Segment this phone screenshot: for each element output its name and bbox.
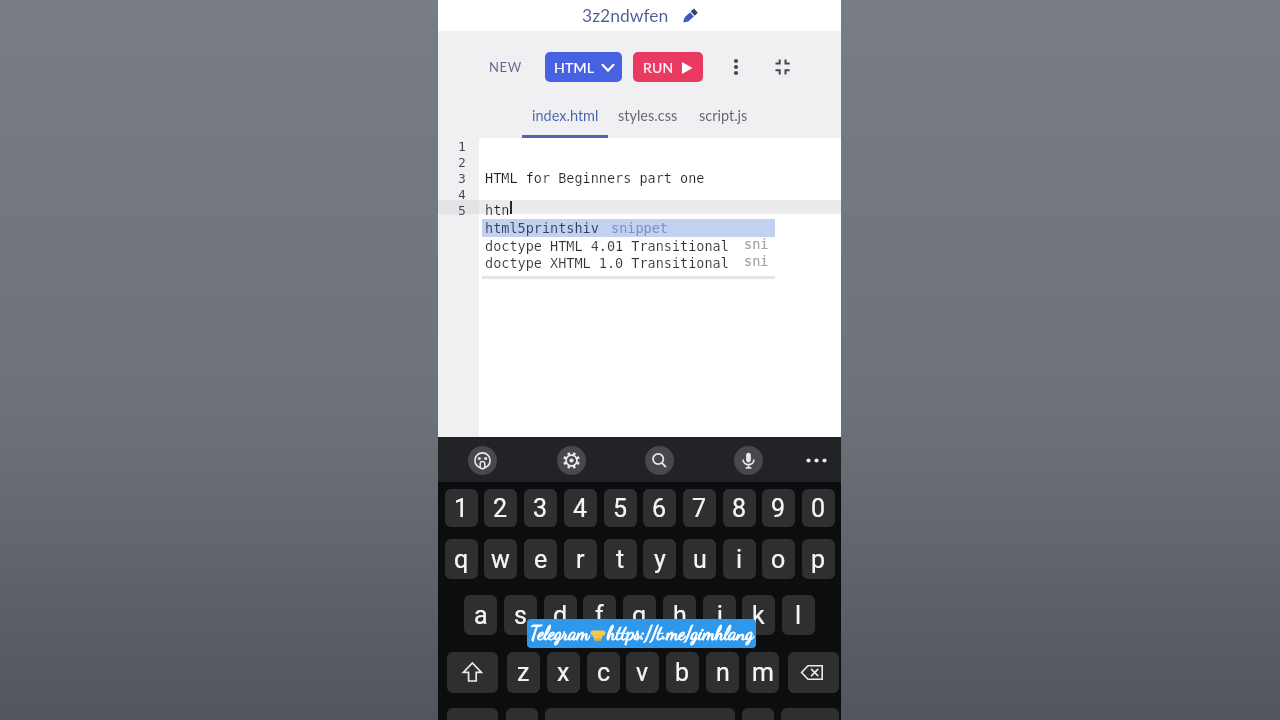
staticText: 1: [458, 139, 466, 154]
staticText: 8: [732, 494, 747, 523]
button[interactable]: 4: [564, 489, 597, 527]
button[interactable]: z: [507, 652, 540, 693]
button[interactable]: [506, 708, 538, 720]
staticText: k: [752, 601, 765, 630]
button[interactable]: Telegram: [527, 619, 756, 648]
button[interactable]: [645, 446, 674, 475]
staticText: script.js: [699, 107, 748, 124]
button[interactable]: 2: [484, 489, 517, 527]
staticText: 5: [458, 203, 466, 218]
staticText: styles.css: [618, 107, 678, 124]
button[interactable]: c: [587, 652, 620, 693]
staticText: c: [597, 658, 611, 687]
button[interactable]: x: [547, 652, 580, 693]
staticText: 2: [458, 155, 466, 170]
button[interactable]: HTML: [545, 52, 622, 82]
button[interactable]: [802, 446, 831, 475]
button[interactable]: [781, 708, 839, 720]
button[interactable]: r: [564, 539, 597, 579]
staticText: snippet: [611, 220, 668, 236]
button[interactable]: 9: [762, 489, 795, 527]
button[interactable]: k: [742, 595, 775, 635]
button[interactable]: 3: [524, 489, 557, 527]
button[interactable]: 1: [445, 489, 478, 527]
staticText: 7: [692, 494, 707, 523]
button[interactable]: a: [464, 595, 497, 635]
button[interactable]: w: [484, 539, 517, 579]
staticText: doctype XHTML 1.0 Transitional: [485, 255, 729, 271]
staticText: snip: [744, 253, 775, 273]
staticText: HTML for Beginners part one: [485, 170, 705, 186]
button[interactable]: index.html: [522, 100, 608, 130]
button[interactable]: g: [623, 595, 656, 635]
button[interactable]: [447, 708, 498, 720]
staticText: x: [557, 658, 570, 687]
staticText: p: [811, 545, 826, 574]
button[interactable]: q: [445, 539, 478, 579]
button[interactable]: n: [706, 652, 739, 693]
button[interactable]: 7: [683, 489, 716, 527]
staticText: b: [675, 658, 690, 687]
button[interactable]: 8: [723, 489, 756, 527]
staticText: index.html: [532, 107, 599, 124]
button[interactable]: [771, 54, 797, 80]
button[interactable]: [447, 652, 498, 693]
button[interactable]: [482, 237, 775, 255]
button[interactable]: [788, 652, 839, 693]
button[interactable]: s: [504, 595, 537, 635]
button[interactable]: [742, 708, 774, 720]
button[interactable]: i: [723, 539, 756, 579]
button[interactable]: b: [666, 652, 699, 693]
staticText: 1: [454, 494, 469, 523]
button[interactable]: t: [604, 539, 637, 579]
button[interactable]: u: [683, 539, 716, 579]
button[interactable]: 6: [643, 489, 676, 527]
button[interactable]: y: [643, 539, 676, 579]
button[interactable]: [482, 219, 775, 237]
button[interactable]: script.js: [693, 100, 753, 130]
button[interactable]: l: [782, 595, 815, 635]
staticText: y: [654, 545, 666, 574]
staticText: v: [636, 658, 649, 687]
staticText: g: [632, 601, 647, 630]
button[interactable]: 5: [604, 489, 637, 527]
button[interactable]: d: [544, 595, 577, 635]
button[interactable]: j: [703, 595, 736, 635]
button[interactable]: e: [524, 539, 557, 579]
staticText: w: [491, 545, 510, 574]
staticText: 3: [458, 171, 466, 186]
button[interactable]: NEW: [480, 52, 530, 82]
staticText: j: [717, 601, 723, 630]
staticText: r: [576, 545, 585, 574]
button[interactable]: f: [583, 595, 616, 635]
button[interactable]: p: [802, 539, 835, 579]
staticText: doctype HTML 4.01 Transitional: [485, 238, 729, 254]
staticText: html5printshiv: [485, 220, 599, 236]
staticText: HTML: [554, 59, 595, 76]
button[interactable]: [734, 446, 763, 475]
staticText: 0: [811, 494, 826, 523]
button[interactable]: RUN: [633, 52, 703, 82]
staticText: u: [693, 545, 707, 574]
button[interactable]: 0: [802, 489, 835, 527]
button[interactable]: o: [762, 539, 795, 579]
button[interactable]: m: [746, 652, 779, 693]
staticText: 9: [771, 494, 786, 523]
staticText: RUN: [643, 59, 674, 76]
button[interactable]: styles.css: [615, 100, 681, 130]
button[interactable]: 3z2ndwfen: [438, 0, 841, 31]
staticText: 5: [613, 494, 628, 523]
button[interactable]: [468, 446, 497, 475]
button[interactable]: v: [626, 652, 659, 693]
staticText: i: [736, 545, 743, 574]
button[interactable]: [557, 446, 586, 475]
staticText: a: [474, 601, 488, 630]
staticText: NEW: [489, 59, 522, 75]
button[interactable]: h: [663, 595, 696, 635]
staticText: m: [752, 658, 774, 687]
staticText: z: [517, 658, 530, 687]
staticText: f: [595, 601, 604, 630]
staticText: n: [716, 658, 730, 687]
button[interactable]: [726, 52, 746, 82]
